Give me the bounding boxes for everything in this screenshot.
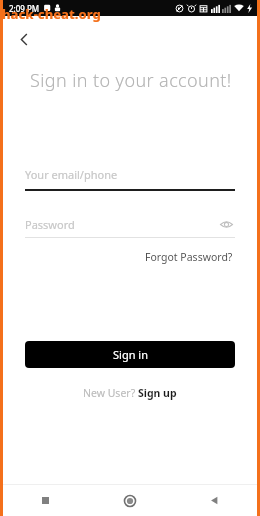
staticText: hack-cheat.org bbox=[2, 5, 101, 23]
button[interactable]: New User? bbox=[79, 384, 181, 402]
button[interactable]: Password bbox=[25, 215, 235, 238]
button[interactable]: Back bbox=[172, 485, 257, 516]
staticText: Sign in to your account! bbox=[30, 68, 237, 93]
button[interactable]: Sign in bbox=[25, 341, 235, 368]
staticText: Forgot Password? bbox=[145, 250, 233, 264]
button[interactable]: Home bbox=[87, 485, 172, 516]
button[interactable]: Your email/phone bbox=[25, 167, 235, 191]
staticText: Your email/phone bbox=[25, 167, 118, 182]
button[interactable]: Show password bbox=[217, 215, 235, 233]
staticText: Password bbox=[25, 217, 217, 232]
staticText: New User? bbox=[83, 386, 138, 400]
staticText: 2:09 PM bbox=[9, 3, 40, 14]
button[interactable]: Recent apps bbox=[3, 485, 87, 516]
staticText: Sign up bbox=[138, 386, 177, 400]
button[interactable]: Back bbox=[7, 22, 41, 56]
button[interactable]: Forgot Password? bbox=[143, 248, 235, 266]
staticText: Sign in bbox=[113, 347, 148, 362]
